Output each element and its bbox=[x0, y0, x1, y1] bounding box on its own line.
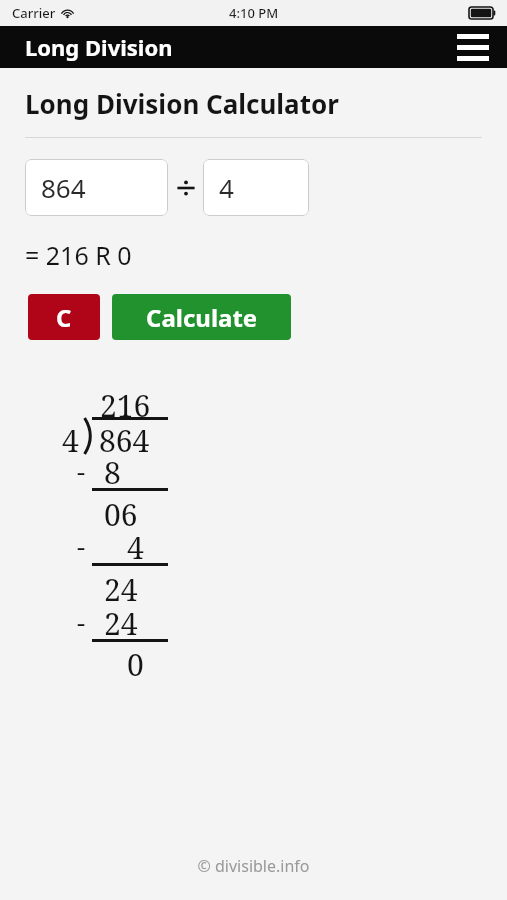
staticText: C bbox=[56, 301, 72, 334]
staticText: Carrier bbox=[12, 4, 56, 22]
staticText: 24 bbox=[104, 603, 138, 644]
staticText: 216 bbox=[100, 385, 151, 426]
button[interactable]: 4 bbox=[203, 159, 309, 216]
staticText: 4 bbox=[127, 527, 144, 568]
staticText: Calculate bbox=[146, 301, 258, 334]
staticText: 0 bbox=[127, 644, 144, 685]
staticText: 24 bbox=[104, 569, 138, 610]
staticText: 4:10 PM bbox=[229, 4, 279, 22]
staticText: - bbox=[77, 528, 86, 563]
staticText: - bbox=[77, 604, 86, 639]
staticText: 4 bbox=[62, 420, 79, 461]
staticText: 4 bbox=[219, 170, 234, 205]
staticText: Long Division Calculator bbox=[25, 86, 339, 121]
button[interactable]: Calculate bbox=[112, 294, 291, 340]
staticText: © divisible.info bbox=[0, 855, 507, 877]
button[interactable]: Menu bbox=[451, 26, 495, 68]
staticText: 864 bbox=[99, 420, 150, 461]
staticText: - bbox=[77, 453, 86, 488]
button[interactable]: C bbox=[28, 294, 100, 340]
staticText: Long Division bbox=[25, 32, 173, 62]
staticText: = 216 R 0 bbox=[25, 238, 132, 272]
staticText: 06 bbox=[104, 494, 138, 535]
staticText: 864 bbox=[41, 170, 86, 205]
button[interactable]: 864 bbox=[25, 159, 168, 216]
staticText: 8 bbox=[104, 452, 121, 493]
